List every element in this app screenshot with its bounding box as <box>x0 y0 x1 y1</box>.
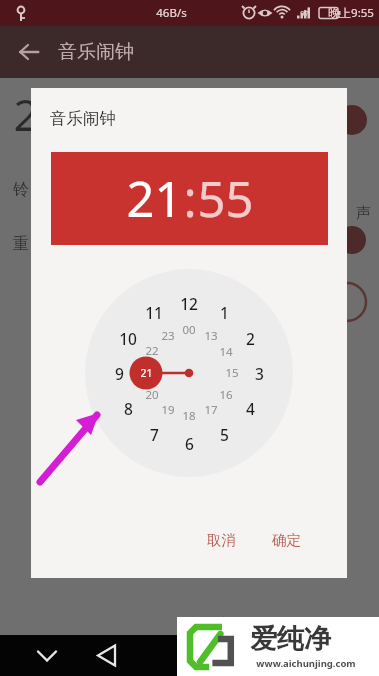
button[interactable]: 6 <box>173 432 205 454</box>
staticText: 17 <box>204 402 218 418</box>
staticText: 11 <box>145 302 163 323</box>
staticText: : <box>183 165 197 232</box>
button[interactable]: 4 <box>234 397 266 419</box>
button[interactable]: 确定 <box>272 531 301 549</box>
staticText: 6 <box>185 433 194 454</box>
staticText: 19 <box>161 402 175 418</box>
button[interactable]: 8 <box>112 397 144 419</box>
staticText: 12 <box>180 293 198 314</box>
button[interactable]: 19 <box>152 399 184 421</box>
staticText: 00 <box>182 322 196 338</box>
button[interactable]: 14 <box>210 341 242 363</box>
staticText: 确定 <box>272 531 301 549</box>
staticText: 97 <box>300 8 309 18</box>
button[interactable]: 取消 <box>207 531 236 549</box>
button[interactable]: 23 <box>152 325 184 347</box>
staticText: 14 <box>219 344 233 360</box>
staticText: 5 <box>220 424 229 445</box>
staticText: 18 <box>182 408 196 424</box>
staticText: 20 <box>145 387 159 403</box>
staticText: 22 <box>145 343 159 359</box>
button[interactable]: Hide keyboard <box>24 635 70 676</box>
button[interactable]: 2 <box>234 327 266 349</box>
staticText: 重 <box>13 234 29 254</box>
button[interactable]: 17 <box>195 399 227 421</box>
staticText: 7 <box>150 424 159 445</box>
staticText: 8 <box>124 398 133 419</box>
staticText: 音乐闹钟 <box>58 40 134 64</box>
staticText: 13 <box>204 328 218 344</box>
button[interactable]: 3 <box>243 362 275 384</box>
button[interactable]: Back <box>0 26 58 78</box>
button[interactable]: 22 <box>136 340 168 362</box>
staticText: 16 <box>219 387 233 403</box>
staticText: 爱纯净 <box>250 622 331 656</box>
staticText: 2 <box>13 84 39 144</box>
button[interactable]: 16 <box>210 384 242 406</box>
button[interactable]: 20 <box>136 384 168 406</box>
button[interactable]: 55 <box>197 165 254 232</box>
button[interactable]: 7 <box>138 423 170 445</box>
staticText: 4 <box>246 398 255 419</box>
button[interactable]: 9 <box>103 362 135 384</box>
button[interactable]: 18 <box>173 405 205 427</box>
button[interactable]: 5 <box>208 423 240 445</box>
staticText: 2 <box>246 328 255 349</box>
staticText: 21 <box>140 366 153 380</box>
staticText: 3 <box>255 363 264 384</box>
button[interactable]: 1 <box>208 301 240 323</box>
staticText: 铃 <box>13 180 29 200</box>
staticText: 取消 <box>207 531 236 549</box>
staticText: 23 <box>161 328 175 344</box>
staticText: 声 <box>356 204 371 223</box>
staticText: 晚上9:55 <box>328 5 374 21</box>
button[interactable]: 10 <box>112 327 144 349</box>
button[interactable]: 21 <box>130 362 162 384</box>
button[interactable]: 11 <box>138 301 170 323</box>
button[interactable]: 21 <box>126 165 183 232</box>
staticText: 15 <box>225 365 239 381</box>
staticText: 10 <box>119 328 137 349</box>
button[interactable]: 15 <box>216 362 248 384</box>
staticText: 46B/s <box>156 5 187 21</box>
staticText: 1 <box>220 302 229 323</box>
staticText: 9 <box>115 363 124 384</box>
button[interactable]: 13 <box>195 325 227 347</box>
staticText: 音乐闹钟 <box>50 108 116 129</box>
button[interactable]: Back <box>84 635 130 676</box>
button[interactable]: 12 <box>173 292 205 314</box>
button[interactable]: 00 <box>173 319 205 341</box>
staticText: www.aichunjing.com <box>256 657 356 670</box>
